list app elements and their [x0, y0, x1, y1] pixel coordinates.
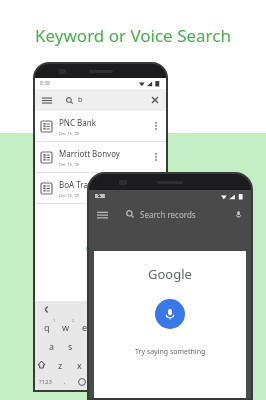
- staticText: e: [82, 321, 88, 333]
- button[interactable]: Menu: [97, 209, 108, 220]
- button[interactable]: x: [70, 355, 89, 374]
- staticText: 8:38: [40, 80, 50, 87]
- staticText: s: [68, 340, 73, 352]
- staticText: Try saying something: [135, 347, 206, 357]
- other: Clear: [151, 96, 159, 104]
- staticText: 1: [53, 318, 56, 323]
- staticText: b: [78, 95, 83, 105]
- staticText: Google: [148, 265, 192, 283]
- staticText: 8:38: [95, 193, 105, 200]
- staticText: d: [87, 340, 93, 352]
- staticText: ,: [64, 378, 66, 386]
- button[interactable]: d: [80, 336, 99, 355]
- staticText: 2: [72, 318, 75, 323]
- button[interactable]: Emoji: [78, 378, 86, 386]
- staticText: Dec 15, '20: [59, 193, 80, 198]
- button[interactable]: Back: [43, 306, 50, 313]
- button[interactable]: a: [42, 336, 61, 355]
- button[interactable]: Menu: [89, 202, 251, 226]
- other: More options: [152, 120, 160, 132]
- staticText: Marriott Bonvoy: [59, 148, 120, 159]
- button[interactable]: z: [51, 355, 70, 374]
- staticText: BoA Travel R: [59, 179, 106, 190]
- button[interactable]: Menu: [42, 95, 52, 105]
- staticText: PNC Bank: [59, 117, 96, 128]
- staticText: Keyword or Voice Search: [0, 24, 266, 47]
- button[interactable]: Voice search: [155, 299, 185, 329]
- button[interactable]: PNC Bank: [35, 111, 166, 142]
- button[interactable]: BoA Travel R: [35, 173, 166, 204]
- other: More options: [152, 151, 160, 163]
- button[interactable]: c: [89, 355, 108, 374]
- button[interactable]: Shift: [37, 360, 46, 369]
- button[interactable]: New Record: [35, 232, 166, 253]
- staticText: Search records: [140, 209, 196, 220]
- button[interactable]: q: [37, 317, 56, 336]
- staticText: x: [77, 359, 82, 371]
- staticText: q: [44, 321, 50, 333]
- button[interactable]: Menu: [35, 89, 166, 111]
- staticText: Dec 15, '20: [59, 162, 80, 167]
- other: More options: [152, 182, 160, 194]
- staticText: w: [62, 321, 70, 333]
- button[interactable]: Marriott Bonvoy: [35, 142, 166, 173]
- staticText: New Record: [86, 246, 115, 253]
- button[interactable]: w: [56, 317, 75, 336]
- staticText: z: [58, 359, 63, 371]
- button[interactable]: e: [75, 317, 94, 336]
- button[interactable]: s: [61, 336, 80, 355]
- button[interactable]: ?123: [39, 378, 52, 386]
- staticText: a: [49, 340, 55, 352]
- staticText: Dec 15, '20: [59, 131, 80, 136]
